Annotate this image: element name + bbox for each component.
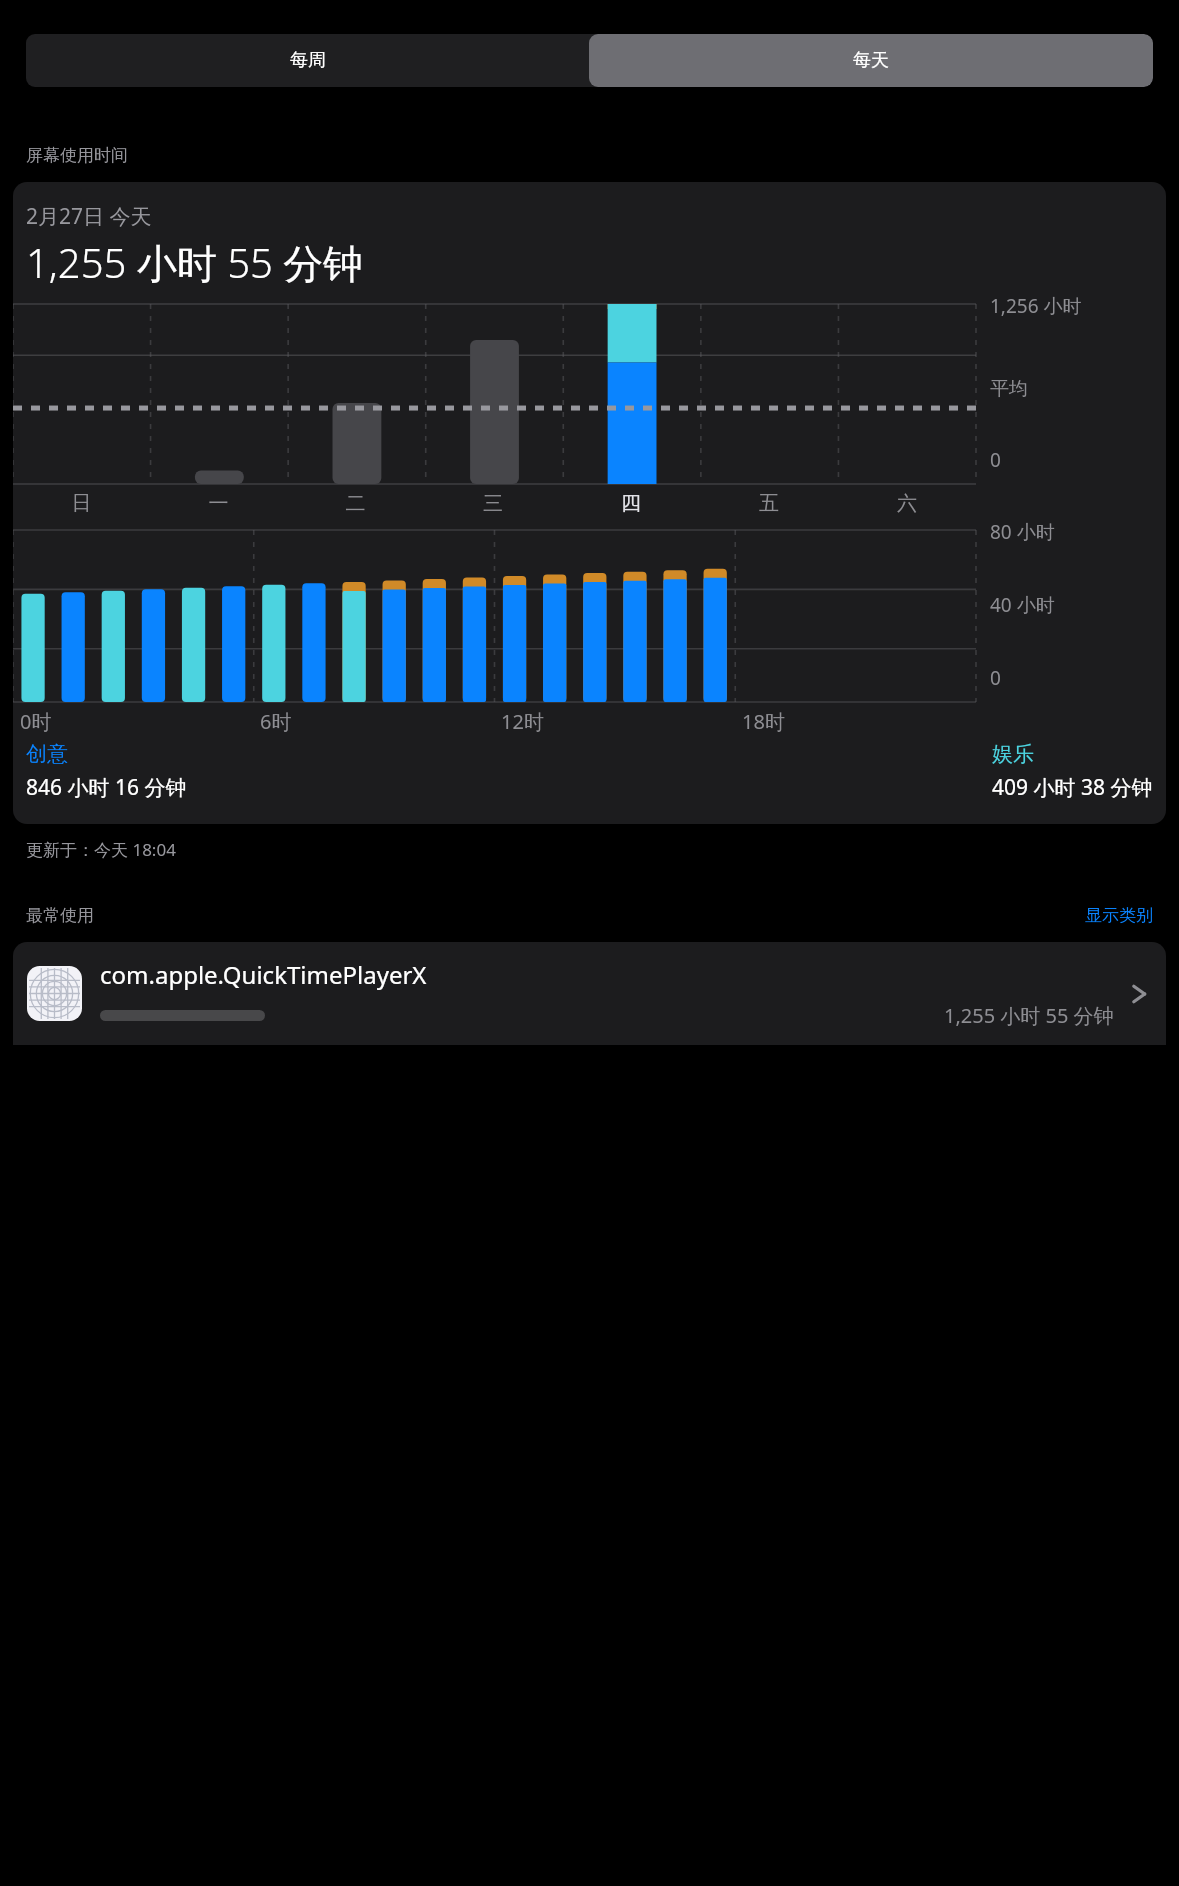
staticText: 2月27日 今天 <box>26 202 152 231</box>
staticText: 80 小时 <box>990 519 1055 545</box>
other: Open details <box>1126 981 1152 1007</box>
staticText: 六 <box>838 491 976 516</box>
staticText: 0 <box>990 665 1001 691</box>
staticText: 平均 <box>990 377 1028 401</box>
staticText: 显示类别 <box>1085 905 1153 926</box>
staticText: 1,256 小时 <box>990 293 1082 319</box>
staticText: 日 <box>13 491 150 516</box>
staticText: 0时 <box>20 708 52 735</box>
button[interactable]: 每天 <box>589 34 1153 87</box>
staticText: 最常使用 <box>26 905 94 926</box>
button[interactable]: 每周 <box>26 34 589 87</box>
staticText: 创意 <box>26 741 68 767</box>
staticText: 四 <box>562 491 700 516</box>
staticText: 846 小时 16 分钟 <box>26 773 187 802</box>
staticText: 每周 <box>290 49 326 72</box>
staticText: 1,255 小时 55 分钟 <box>26 235 364 290</box>
staticText: 三 <box>424 491 562 516</box>
staticText: 五 <box>700 491 838 516</box>
staticText: 40 小时 <box>990 592 1055 618</box>
staticText: 屏幕使用时间 <box>26 145 128 166</box>
button[interactable]: com.apple.QuickTimePlayerX <box>13 942 1166 1045</box>
staticText: 6时 <box>260 708 292 735</box>
staticText: 每天 <box>853 49 889 72</box>
staticText: com.apple.QuickTimePlayerX <box>100 958 427 991</box>
staticText: 409 小时 38 分钟 <box>992 773 1153 802</box>
staticText: 一 <box>150 491 287 516</box>
staticText: 二 <box>287 491 424 516</box>
staticText: 1,255 小时 55 分钟 <box>944 1002 1114 1029</box>
staticText: 12时 <box>501 708 544 735</box>
staticText: 娱乐 <box>992 741 1034 767</box>
staticText: 更新于：今天 18:04 <box>26 838 176 861</box>
staticText: 18时 <box>742 708 785 735</box>
staticText: 0 <box>990 447 1001 473</box>
button[interactable]: 显示类别 <box>1085 905 1153 926</box>
